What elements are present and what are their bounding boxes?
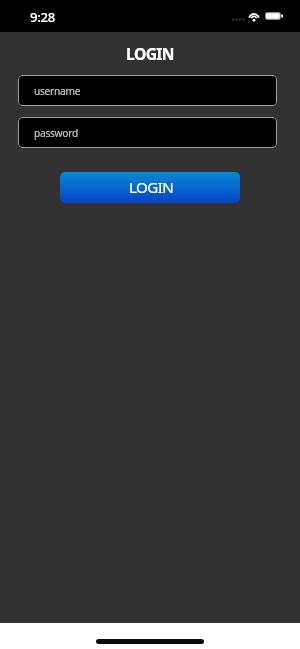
button[interactable]: LOGIN bbox=[60, 172, 240, 203]
button[interactable]: password bbox=[18, 117, 277, 148]
other: Cellular signal bbox=[232, 13, 245, 22]
staticText: username bbox=[34, 84, 81, 98]
staticText: LOGIN bbox=[0, 43, 300, 64]
button[interactable]: username bbox=[18, 75, 277, 106]
staticText: LOGIN bbox=[129, 177, 174, 198]
other: Battery full bbox=[265, 12, 283, 20]
staticText: 9:28 bbox=[30, 8, 56, 26]
other: Wi-Fi bbox=[248, 12, 260, 21]
staticText: password bbox=[34, 126, 78, 140]
